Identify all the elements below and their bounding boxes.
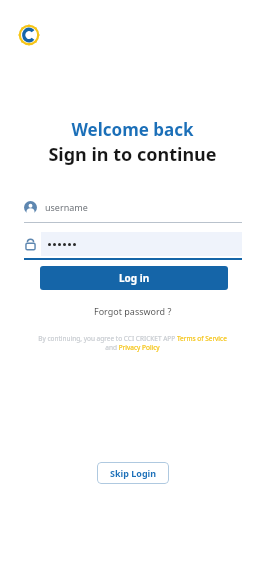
button[interactable]: [24, 232, 242, 256]
staticText: Skip Login: [110, 467, 157, 479]
button[interactable]: Skip Login: [97, 462, 169, 484]
staticText: Sign in to continue: [0, 142, 265, 167]
button[interactable]: Log in: [40, 266, 228, 290]
other: CCI Cricket logo: [19, 25, 39, 45]
staticText: Forgot password ?: [94, 305, 172, 317]
button[interactable]: username: [24, 196, 242, 218]
button[interactable]: Forgot password ?: [88, 303, 178, 319]
staticText: By continuing, you agree to CCI CRICKET …: [34, 334, 231, 352]
staticText: Welcome back: [0, 118, 265, 141]
staticText: Log in: [119, 271, 150, 285]
staticText: username: [45, 201, 88, 213]
